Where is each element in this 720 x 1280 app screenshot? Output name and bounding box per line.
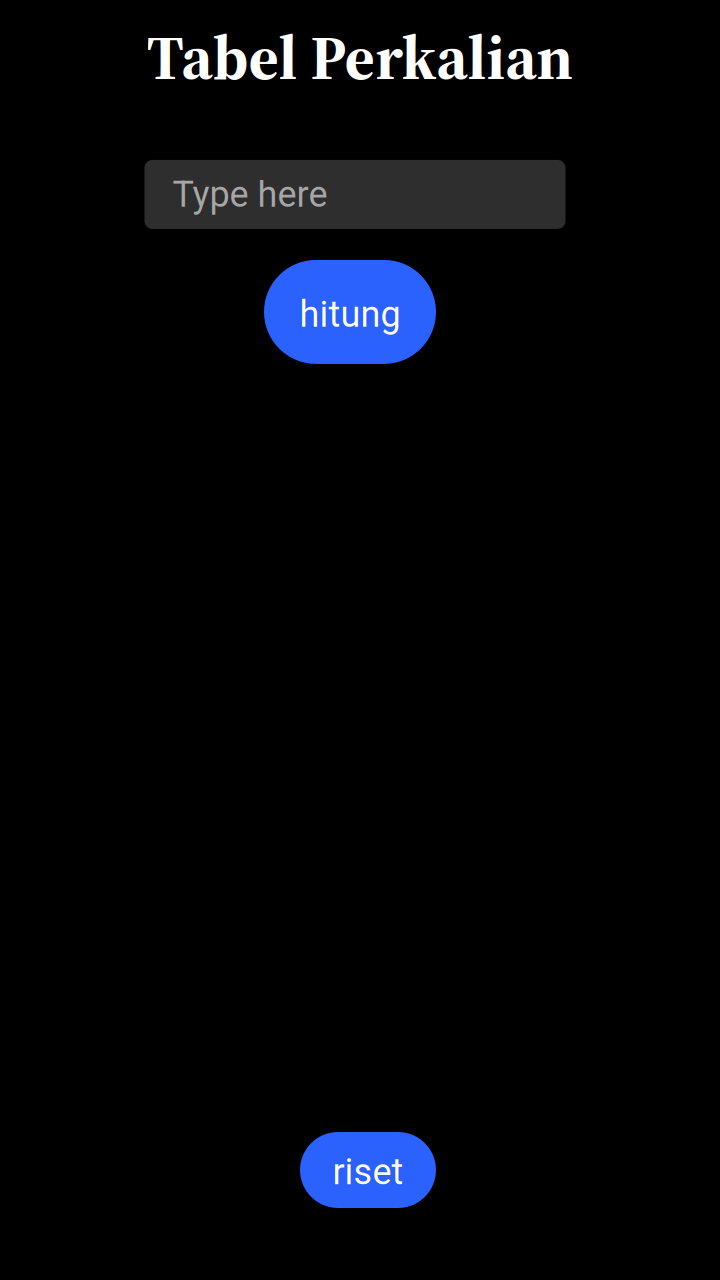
- staticText: Tabel Perkalian: [146, 14, 573, 100]
- button[interactable]: Type here: [144, 160, 565, 229]
- staticText: hitung: [299, 293, 400, 335]
- staticText: riset: [332, 1151, 403, 1193]
- button[interactable]: hitung: [264, 260, 436, 364]
- staticText: Type here: [172, 173, 327, 215]
- button[interactable]: riset: [300, 1132, 436, 1208]
